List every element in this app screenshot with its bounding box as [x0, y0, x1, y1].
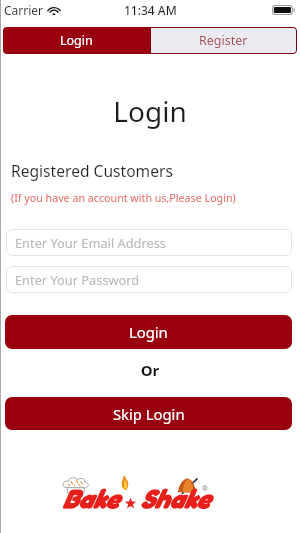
staticText: Register: [199, 32, 248, 49]
staticText: Or: [0, 360, 300, 380]
button[interactable]: Login: [5, 315, 292, 349]
staticText: Login: [0, 92, 300, 130]
staticText: (If you have an account with us,Please L…: [11, 191, 236, 206]
staticText: Bake: [62, 483, 119, 514]
staticText: Enter Your Password: [15, 271, 140, 288]
staticText: 11:34 AM: [124, 2, 177, 18]
button[interactable]: Enter Your Password: [6, 266, 292, 293]
button[interactable]: Register: [150, 27, 297, 54]
button[interactable]: Skip Login: [5, 397, 292, 430]
staticText: Carrier: [4, 2, 44, 18]
staticText: Enter Your Email Address: [15, 234, 166, 251]
staticText: Login: [60, 32, 93, 49]
staticText: Registered Customers: [11, 160, 173, 181]
staticText: Skip Login: [113, 404, 185, 424]
button[interactable]: Enter Your Email Address: [6, 229, 292, 256]
staticText: Login: [129, 322, 168, 342]
staticText: Shake: [140, 483, 210, 514]
button[interactable]: Login: [3, 27, 150, 54]
staticText: ®: [202, 484, 208, 494]
